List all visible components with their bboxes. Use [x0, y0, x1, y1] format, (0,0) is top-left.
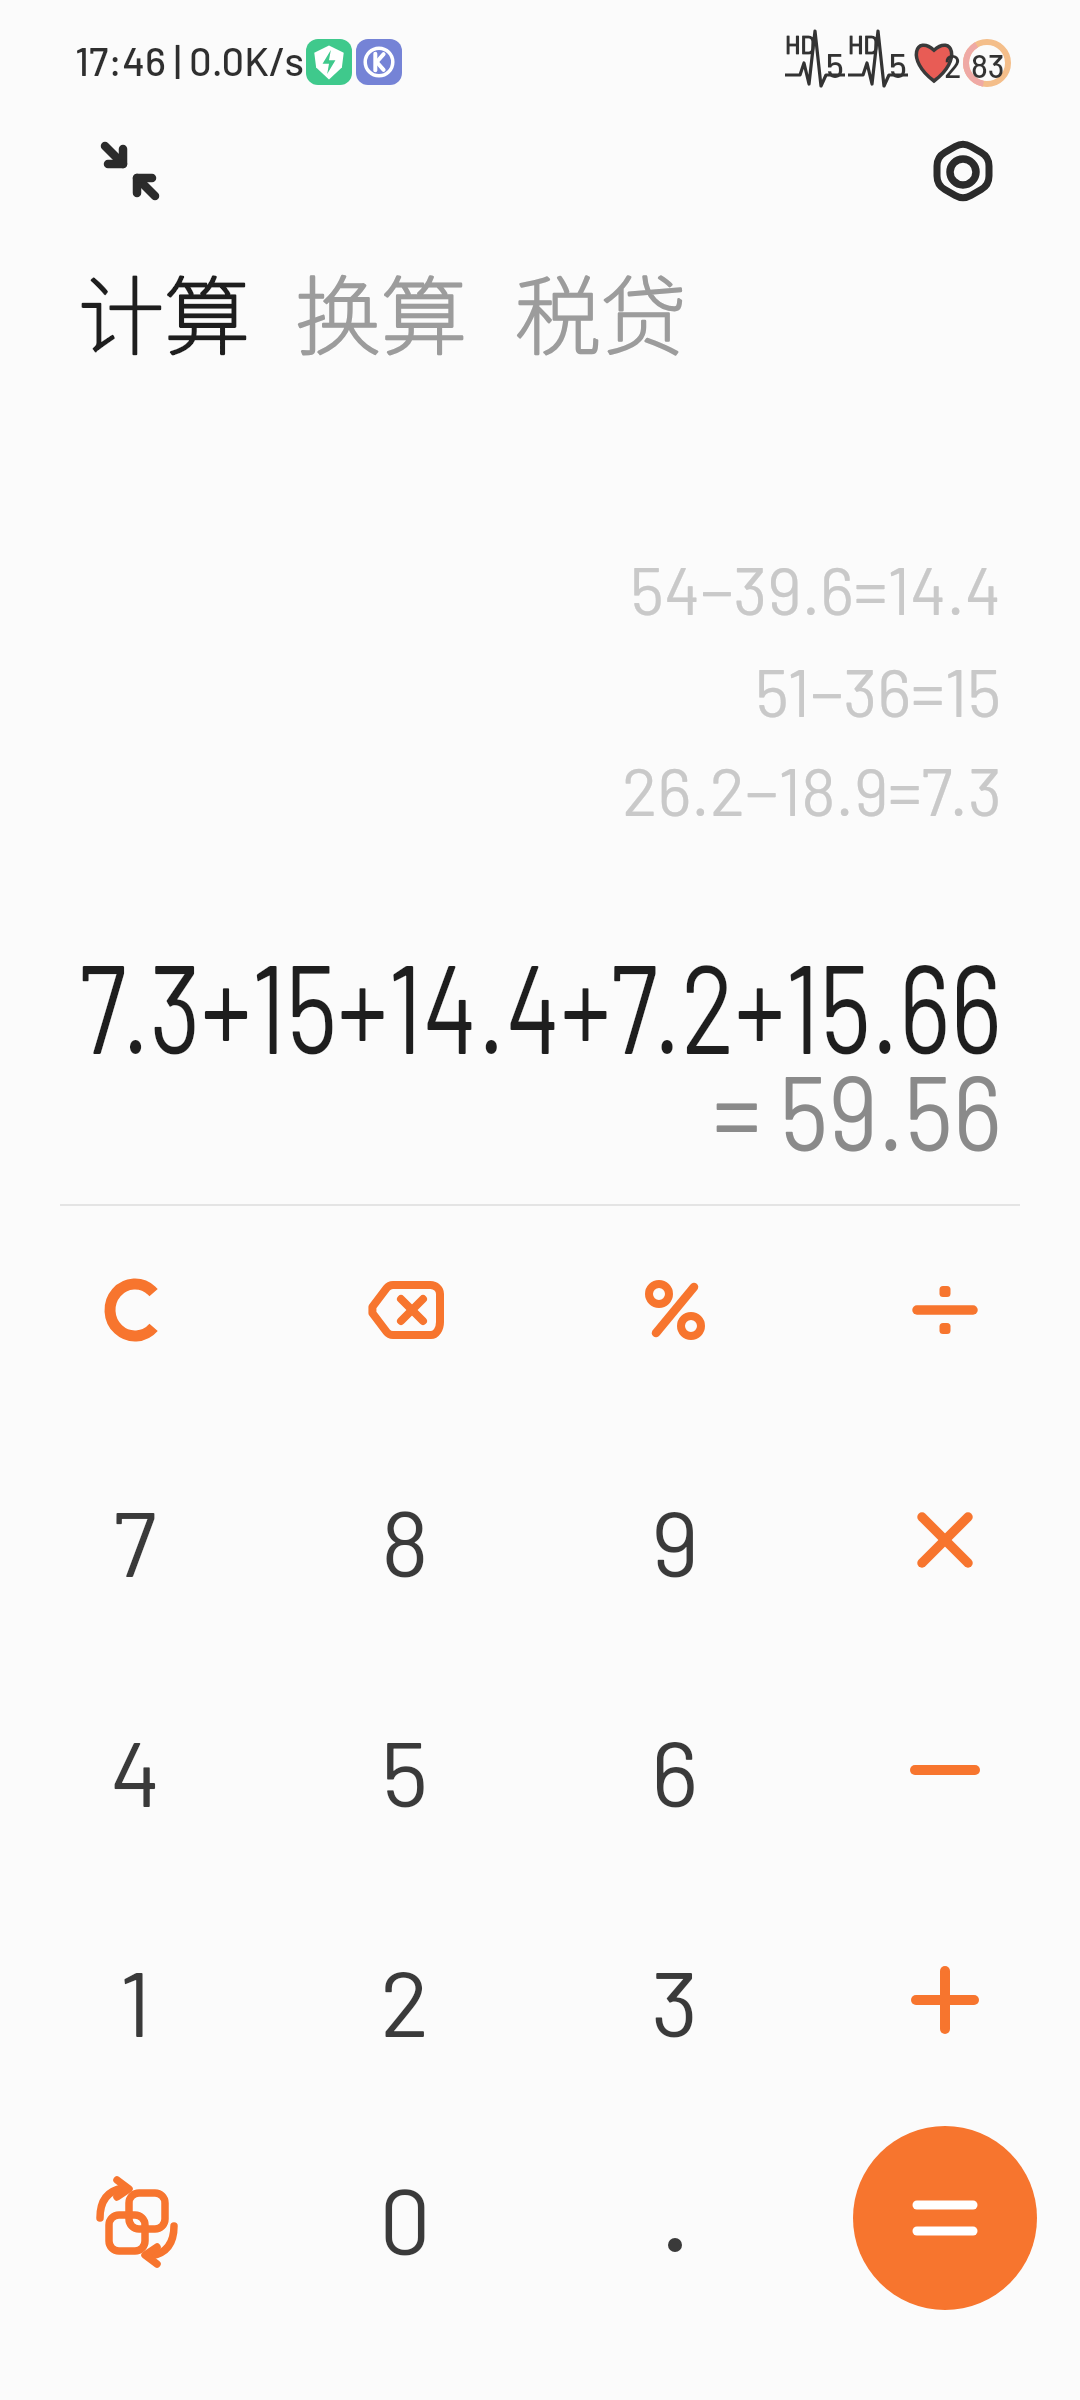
staticText: 2 — [380, 1945, 430, 2055]
button[interactable] — [0, 2103, 270, 2333]
button[interactable]: 计算 — [78, 248, 250, 373]
staticText: 51−36=15 — [755, 651, 1002, 730]
staticText: 税贷 — [515, 248, 687, 373]
staticText: HD — [848, 30, 879, 59]
staticText: 8 — [381, 1485, 429, 1595]
button[interactable] — [810, 1195, 1080, 1425]
staticText: 1 — [119, 1945, 152, 2055]
staticText: 7.3+15+14.4+7.2+15.66 — [79, 929, 1002, 1079]
staticText: 计算 — [78, 248, 250, 373]
button[interactable] — [270, 1195, 540, 1425]
staticText: 2 — [944, 46, 962, 84]
button[interactable] — [540, 2103, 810, 2333]
staticText: 税贷 — [515, 248, 687, 373]
staticText: 5 — [826, 44, 844, 85]
button[interactable]: 4 — [0, 1655, 270, 1885]
button[interactable]: 9 — [540, 1425, 810, 1655]
button[interactable] — [810, 1885, 1080, 2115]
staticText: 3 — [651, 1945, 699, 2055]
button[interactable]: 3 — [540, 1885, 810, 2115]
button[interactable]: 0 — [270, 2103, 540, 2333]
button[interactable]: 2 — [270, 1885, 540, 2115]
button[interactable] — [853, 2126, 1037, 2310]
button[interactable]: 5 — [270, 1655, 540, 1885]
button[interactable]: 6 — [540, 1655, 810, 1885]
button[interactable]: 8 — [270, 1425, 540, 1655]
staticText: = 59.56 — [713, 1046, 1002, 1172]
button[interactable]: 换算 — [295, 248, 467, 373]
staticText: 4 — [110, 1715, 161, 1825]
staticText: 计算 — [78, 248, 250, 373]
button[interactable] — [810, 1425, 1080, 1655]
staticText: 0 — [379, 2163, 431, 2273]
staticText: 9 — [651, 1485, 699, 1595]
button[interactable]: 7 — [0, 1425, 270, 1655]
staticText: 26.2−18.9=7.3 — [622, 750, 1002, 829]
button[interactable]: 1 — [0, 1885, 270, 2115]
button[interactable]: 税贷 — [515, 248, 687, 373]
button[interactable] — [928, 136, 998, 206]
staticText: 6 — [651, 1715, 699, 1825]
staticText: 换算 — [295, 248, 467, 373]
staticText: 54−39.6=14.4 — [630, 549, 1002, 628]
staticText: HD — [785, 30, 816, 59]
staticText: 换算 — [295, 248, 467, 373]
button[interactable] — [0, 1195, 270, 1425]
staticText: 7 — [113, 1485, 157, 1595]
staticText: 5 — [889, 44, 907, 85]
button[interactable] — [810, 1655, 1080, 1885]
button[interactable] — [540, 1195, 810, 1425]
staticText: 5 — [381, 1715, 429, 1825]
staticText: 83 — [971, 46, 1005, 84]
button[interactable] — [810, 2103, 1080, 2333]
staticText: 17:46 | 0.0K/s — [75, 36, 305, 84]
button[interactable] — [95, 135, 165, 205]
